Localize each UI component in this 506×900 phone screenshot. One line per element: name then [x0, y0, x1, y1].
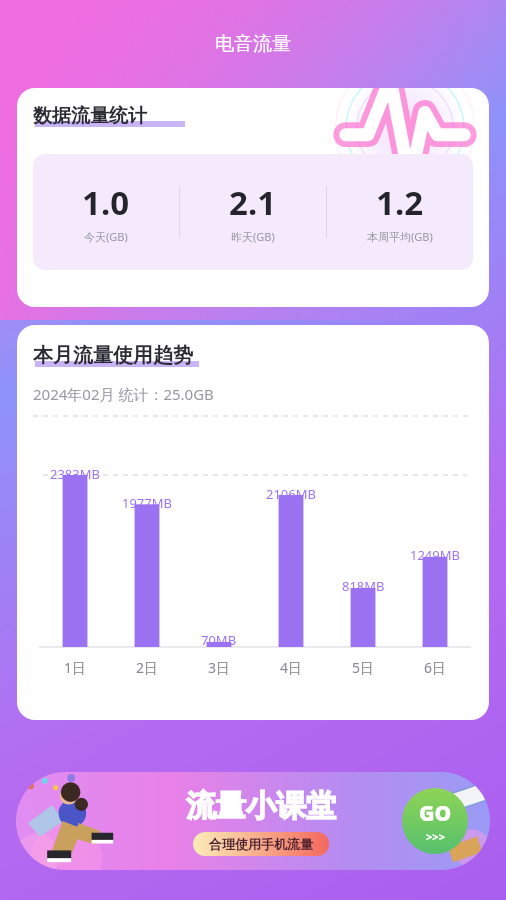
staticText: 2383MB [50, 465, 100, 483]
button[interactable]: 1.2 [327, 180, 473, 244]
staticText: 昨天(GB) [231, 229, 275, 244]
staticText: 1249MB [410, 546, 460, 564]
button[interactable]: GO - 进入流量小课堂 [402, 788, 468, 854]
staticText: 70MB [201, 631, 237, 649]
staticText: 2日 [136, 658, 159, 677]
staticText: 3日 [208, 658, 231, 677]
staticText: 1977MB [122, 494, 172, 512]
staticText: 本月流量使用趋势 [33, 343, 193, 368]
button[interactable]: 数据流量统计 [17, 88, 489, 307]
staticText: 本周平均(GB) [367, 229, 433, 244]
button[interactable]: 2.1 [180, 180, 326, 244]
staticText: 今天(GB) [84, 229, 128, 244]
staticText: 2.1 [229, 180, 277, 225]
staticText: 合理使用手机流量 [209, 836, 313, 852]
staticText: GO [419, 799, 452, 828]
staticText: >>> [426, 829, 445, 844]
button[interactable]: 1.0 [33, 180, 179, 244]
staticText: 2024年02月 统计：25.0GB [33, 384, 214, 404]
staticText: 2106MB [266, 485, 316, 503]
staticText: 流量小课堂 [186, 787, 336, 825]
staticText: 1.2 [376, 180, 424, 225]
button[interactable]: 流量小课堂 [16, 772, 490, 870]
staticText: 数据流量统计 [33, 104, 147, 128]
staticText: 818MB [342, 577, 385, 595]
staticText: 1日 [64, 658, 87, 677]
staticText: 1.0 [82, 180, 130, 225]
button[interactable]: 本月流量使用趋势 [17, 325, 489, 720]
staticText: 4日 [280, 658, 303, 677]
staticText: 电音流量 [215, 32, 291, 56]
staticText: 5日 [352, 658, 375, 677]
staticText: 6日 [424, 658, 447, 677]
